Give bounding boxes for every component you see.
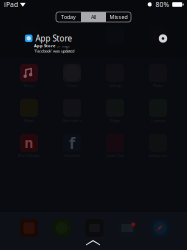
button[interactable]: n <box>14 134 44 158</box>
staticText: n <box>24 134 33 152</box>
staticText: 37 m ago <box>57 45 70 48</box>
button[interactable]: Insta Chat <box>100 134 130 158</box>
button[interactable]: Photos <box>143 64 173 88</box>
staticText: App Store <box>34 43 55 48</box>
staticText: Word Reader <box>17 153 40 158</box>
button[interactable]: Mail <box>118 219 136 237</box>
button[interactable]: Photo Editor <box>20 219 38 237</box>
staticText: Newsstand <box>19 45 38 50</box>
button[interactable]: Missed <box>106 12 131 22</box>
button[interactable]: App Store <box>25 33 72 44</box>
staticText: Maps <box>110 118 120 123</box>
button[interactable]: Instagram <box>143 134 173 158</box>
button[interactable]: All <box>81 12 106 22</box>
button[interactable]: Reminders <box>57 99 87 123</box>
button[interactable]: Today <box>56 12 81 22</box>
button[interactable]: Contacts <box>143 99 173 123</box>
staticText: Videos <box>66 45 77 50</box>
staticText: Reminders <box>62 118 81 123</box>
button[interactable]: Notes <box>53 219 71 237</box>
button[interactable]: Camera <box>85 219 103 237</box>
staticText: Photos <box>152 83 163 88</box>
staticText: 80% <box>155 0 169 9</box>
staticText: Notes <box>24 118 34 123</box>
staticText: Clock <box>67 83 77 88</box>
button[interactable]: Music <box>14 64 44 88</box>
button[interactable]: Notes <box>14 99 44 123</box>
staticText: App Store <box>35 33 72 44</box>
staticText: Insta Chat <box>106 153 123 158</box>
staticText: Contacts <box>150 118 165 123</box>
button[interactable]: Newsstand <box>14 26 44 50</box>
staticText: Instagram <box>149 153 167 158</box>
staticText: 'Facebook' was updated <box>34 48 74 54</box>
staticText: All <box>91 13 96 21</box>
button[interactable]: Clock <box>57 64 87 88</box>
staticText: f <box>69 132 75 153</box>
staticText: Facebook <box>64 153 80 158</box>
button[interactable]: Videos <box>57 26 87 50</box>
button[interactable]: Maps <box>100 99 130 123</box>
button[interactable]: App Store <box>34 43 74 54</box>
button[interactable]: Settings <box>100 64 130 88</box>
staticText: Settings <box>108 83 121 88</box>
button[interactable]: Notification settings <box>158 34 167 43</box>
button[interactable]: f <box>57 134 87 158</box>
staticText: Missed <box>109 13 127 21</box>
button[interactable]: Safari <box>151 219 169 237</box>
staticText: Today <box>61 13 76 21</box>
button[interactable]: iTunes Store <box>143 26 173 50</box>
staticText: iPad <box>4 0 18 9</box>
staticText: Music <box>23 83 34 88</box>
